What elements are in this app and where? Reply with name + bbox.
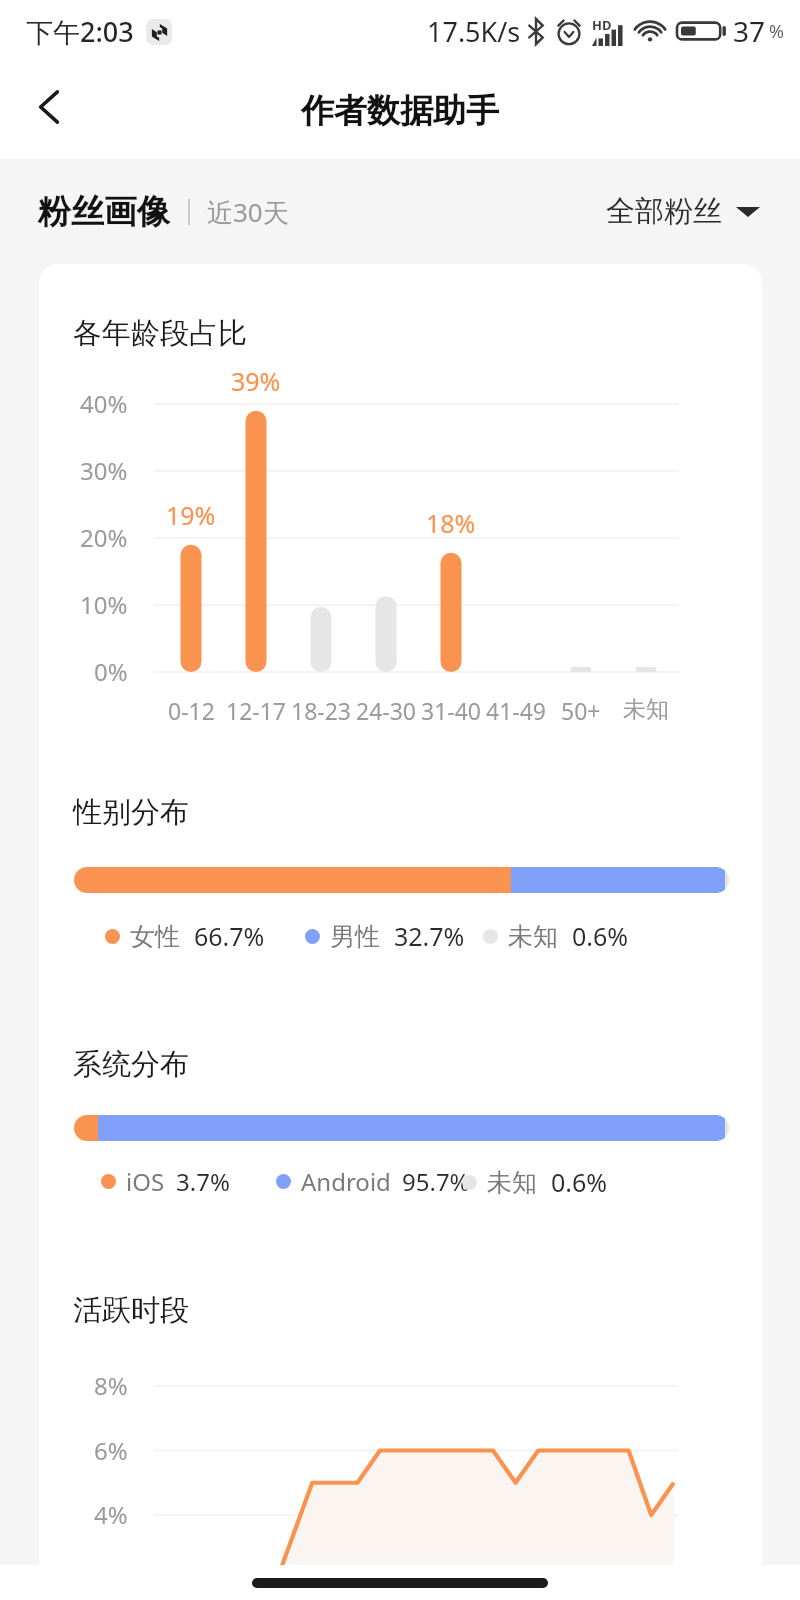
staticText: 作者数据助手 xyxy=(301,90,499,132)
button[interactable]: 全部粉丝 xyxy=(606,193,760,230)
staticText: HD xyxy=(592,16,612,34)
staticText: 4% xyxy=(94,1498,128,1531)
staticText: 系统分布 xyxy=(73,1046,189,1083)
staticText: 39% xyxy=(231,364,281,398)
staticText: 50+ xyxy=(561,695,601,726)
staticText: Android xyxy=(301,1165,391,1198)
staticText: 全部粉丝 xyxy=(606,193,722,230)
staticText: 粉丝画像 xyxy=(38,191,170,233)
staticText: 0-12 xyxy=(168,695,215,726)
staticText: 41-49 xyxy=(486,695,547,726)
staticText: 活跃时段 xyxy=(73,1292,189,1329)
staticText: 18-23 xyxy=(291,695,352,726)
staticText: 近30天 xyxy=(207,194,289,230)
staticText: 未知 xyxy=(487,1167,537,1198)
button[interactable]: Back xyxy=(17,75,81,139)
staticText: 下午2:03 xyxy=(26,13,134,50)
staticText: 32.7% xyxy=(394,919,465,953)
staticText: 30% xyxy=(80,454,128,487)
staticText: iOS xyxy=(126,1165,165,1198)
staticText: 6% xyxy=(94,1434,128,1467)
staticText: 8% xyxy=(94,1369,128,1402)
staticText: 各年龄段占比 xyxy=(73,315,247,352)
staticText: 0% xyxy=(94,655,128,688)
staticText: 3.7% xyxy=(176,1165,230,1198)
staticText: 未知 xyxy=(508,921,558,952)
staticText: % xyxy=(769,19,784,44)
staticText: 19% xyxy=(166,498,216,532)
staticText: 24-30 xyxy=(356,695,417,726)
staticText: 0.6% xyxy=(572,919,629,953)
staticText: 性别分布 xyxy=(73,794,189,831)
staticText: 17.5K/s xyxy=(427,13,521,50)
staticText: 男性 xyxy=(330,921,380,952)
staticText: 40% xyxy=(80,387,128,420)
staticText: 37 xyxy=(733,12,766,50)
staticText: 10% xyxy=(80,588,128,621)
staticText: 20% xyxy=(80,521,128,554)
staticText: 女性 xyxy=(130,921,180,952)
staticText: 0.6% xyxy=(551,1165,608,1199)
staticText: 95.7% xyxy=(402,1165,470,1198)
staticText: 18% xyxy=(426,506,476,540)
staticText: 31-40 xyxy=(421,695,482,726)
staticText: 12-17 xyxy=(226,695,287,726)
staticText: 未知 xyxy=(623,695,669,724)
staticText: 66.7% xyxy=(194,919,265,953)
